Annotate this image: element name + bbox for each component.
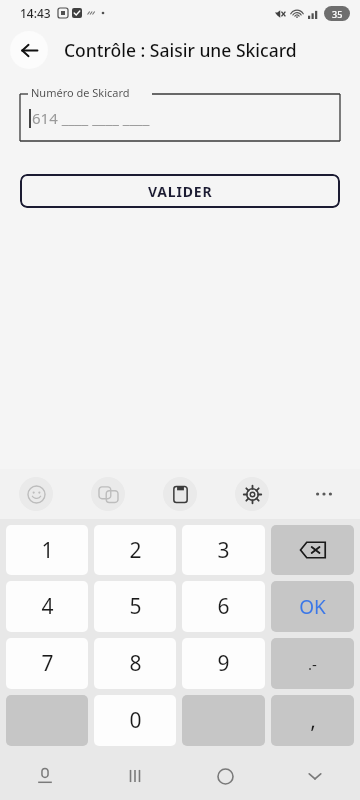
button[interactable]: 4 bbox=[6, 581, 88, 632]
staticText: 9 bbox=[217, 649, 230, 678]
button[interactable]: Keyboard settings bbox=[216, 469, 288, 519]
button[interactable]: 7 bbox=[6, 638, 88, 689]
button[interactable]: 1 bbox=[6, 525, 88, 575]
staticText: 4 bbox=[41, 592, 54, 621]
button[interactable]: OK bbox=[271, 581, 354, 632]
staticText: VALIDER bbox=[148, 182, 213, 201]
staticText: , bbox=[310, 706, 316, 735]
button[interactable]: 9 bbox=[182, 638, 265, 689]
button[interactable]: 8 bbox=[94, 638, 176, 689]
staticText: 0 bbox=[129, 706, 142, 735]
button[interactable]: 3 bbox=[182, 525, 265, 575]
staticText: 7 bbox=[41, 649, 54, 678]
staticText: 1 bbox=[41, 536, 54, 565]
staticText: 2 bbox=[129, 536, 142, 565]
button[interactable]: Backspace bbox=[271, 525, 354, 575]
staticText: 8 bbox=[129, 649, 142, 678]
button[interactable]: , bbox=[271, 695, 354, 746]
button[interactable]: Hide keyboard bbox=[270, 752, 360, 800]
staticText: 614 ____ ____ ____ bbox=[32, 108, 150, 128]
button[interactable]: Recents bbox=[90, 752, 180, 800]
staticText: 5 bbox=[129, 592, 142, 621]
staticText: 14:43 bbox=[20, 5, 51, 21]
button[interactable]: VALIDER bbox=[20, 174, 340, 208]
button[interactable]: Home bbox=[180, 752, 270, 800]
button[interactable]: 0 bbox=[94, 695, 176, 746]
button[interactable]: Clipboard bbox=[144, 469, 216, 519]
staticText: Numéro de Skicard bbox=[31, 85, 130, 100]
button[interactable]: More options bbox=[288, 469, 360, 519]
button[interactable]: .- bbox=[271, 638, 354, 689]
button[interactable]: 5 bbox=[94, 581, 176, 632]
staticText: 35 bbox=[332, 8, 343, 20]
staticText: 6 bbox=[217, 592, 230, 621]
button[interactable]: Voice input bbox=[0, 752, 90, 800]
button[interactable]: Emoji bbox=[0, 469, 72, 519]
button[interactable]: Translate bbox=[72, 469, 144, 519]
button[interactable]: 2 bbox=[94, 525, 176, 575]
staticText: Contrôle : Saisir une Skicard bbox=[64, 38, 297, 62]
button[interactable]: Back bbox=[10, 31, 48, 69]
button[interactable]: 6 bbox=[182, 581, 265, 632]
staticText: .- bbox=[308, 654, 317, 674]
staticText: OK bbox=[299, 594, 326, 620]
staticText: 3 bbox=[217, 536, 230, 565]
